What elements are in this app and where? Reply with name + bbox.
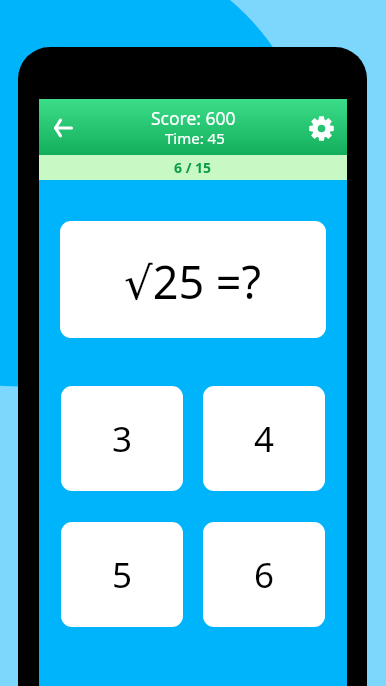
- staticText: 3: [112, 415, 133, 463]
- staticText: Time: 45: [165, 128, 225, 148]
- staticText: 4: [254, 415, 275, 463]
- button[interactable]: 4: [203, 386, 325, 491]
- button[interactable]: 3: [61, 386, 183, 491]
- button[interactable]: 5: [61, 522, 183, 627]
- staticText: 6 / 15: [174, 158, 212, 177]
- staticText: Score: 600: [151, 106, 236, 130]
- staticText: 6: [254, 551, 275, 599]
- button[interactable]: 6: [203, 522, 325, 627]
- button[interactable]: Settings: [299, 106, 343, 150]
- staticText: √25 =?: [124, 251, 262, 312]
- button[interactable]: Back: [41, 106, 85, 150]
- staticText: 5: [112, 551, 133, 599]
